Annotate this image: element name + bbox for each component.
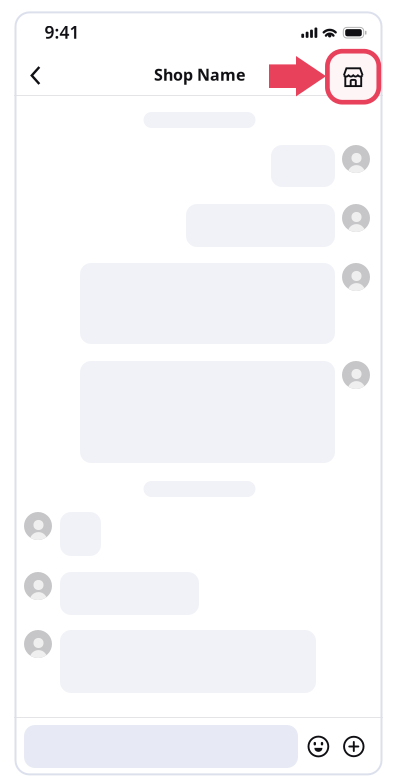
button[interactable]: Back: [18, 55, 54, 95]
button[interactable]: Emoji: [301, 729, 335, 763]
staticText: Shop Name: [154, 64, 246, 85]
button[interactable]: Shop: [336, 56, 376, 96]
staticText: 9:41: [45, 21, 80, 44]
button[interactable]: Add attachment: [337, 729, 371, 763]
